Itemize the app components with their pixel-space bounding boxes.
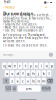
staticText: r xyxy=(19,63,21,68)
staticText: ⌃ ⊕ ⋯ xyxy=(40,5,53,8)
staticText: ⌫ xyxy=(47,79,53,83)
staticText: 9:41 xyxy=(4,0,11,4)
staticText: welcome screen. xyxy=(3,39,26,42)
staticText: 123 xyxy=(5,87,11,90)
staticText: ⇧ xyxy=(4,79,7,83)
staticText: e xyxy=(14,63,16,68)
button[interactable]: r xyxy=(18,63,22,69)
button[interactable]: x xyxy=(15,78,20,84)
button[interactable]: ⌃ ⊕ ⋯ xyxy=(40,5,53,8)
staticText: return xyxy=(42,87,51,90)
staticText: u xyxy=(35,63,37,68)
button[interactable]: space xyxy=(18,85,41,92)
staticText: o xyxy=(45,63,47,68)
staticText: q xyxy=(3,63,5,68)
staticText: f xyxy=(22,71,23,76)
staticText: v xyxy=(27,78,29,84)
button[interactable]: p xyxy=(49,63,54,69)
button[interactable]: a xyxy=(5,70,9,76)
button[interactable]: 123 xyxy=(5,85,11,92)
button[interactable]: f xyxy=(21,70,25,76)
button[interactable]: c xyxy=(21,78,25,84)
button[interactable]: y xyxy=(28,63,33,69)
button[interactable]: u xyxy=(34,63,38,69)
staticText: space xyxy=(26,87,33,90)
staticText: I'll share the deck before then. xyxy=(3,44,48,47)
staticText: k xyxy=(43,71,45,76)
staticText: We've been working on a refresh of the xyxy=(3,14,53,17)
button[interactable]: w xyxy=(7,63,12,69)
staticText: ▮▮ ⌁ ▰ xyxy=(44,1,52,4)
staticText: h xyxy=(32,71,34,76)
button[interactable]: k xyxy=(42,70,46,76)
button[interactable]: ⇧ xyxy=(3,78,9,84)
button[interactable]: s xyxy=(10,70,14,76)
staticText: w xyxy=(8,63,11,68)
button[interactable]: ⌫ xyxy=(47,78,53,84)
staticText: y xyxy=(30,63,32,68)
button[interactable]: l xyxy=(47,70,51,76)
staticText: • Simplify the first screen xyxy=(3,23,37,26)
staticText: t xyxy=(25,63,26,68)
staticText: ☺ xyxy=(13,87,16,90)
button[interactable]: v xyxy=(26,78,30,84)
button[interactable]: o xyxy=(44,63,49,69)
button[interactable]: j xyxy=(36,70,41,76)
staticText: n xyxy=(37,78,39,84)
staticText: ‹ Notes xyxy=(3,4,15,10)
button[interactable]: m xyxy=(42,78,46,84)
staticText: a xyxy=(6,71,8,76)
staticText: z xyxy=(11,78,13,84)
staticText: m xyxy=(42,78,46,84)
staticText: j xyxy=(38,71,39,76)
staticText: Let's regroup on Thursday and xyxy=(3,33,45,36)
staticText: onboarding flow. A few notes from the xyxy=(3,17,53,20)
staticText: • Move the sign-in link lower xyxy=(3,26,44,29)
staticText: b xyxy=(32,78,34,84)
staticText: • Use the new illustration set xyxy=(3,29,43,32)
staticText: i xyxy=(41,63,42,68)
button[interactable]: i xyxy=(39,63,43,69)
staticText: Message xyxy=(3,53,14,56)
button[interactable]: e xyxy=(13,63,17,69)
staticText: d xyxy=(16,71,18,76)
button[interactable]: ☺ xyxy=(12,85,17,92)
staticText: decide on the final copy for the xyxy=(3,36,49,39)
staticText: l xyxy=(49,71,50,76)
button[interactable]: d xyxy=(15,70,20,76)
button[interactable]: n xyxy=(36,78,41,84)
staticText: x xyxy=(16,78,18,84)
button[interactable]: t xyxy=(23,63,27,69)
button[interactable]: return xyxy=(41,85,51,92)
staticText: review this morning: xyxy=(3,20,30,23)
button[interactable]: q xyxy=(2,63,6,69)
staticText: g xyxy=(27,71,29,76)
staticText: s xyxy=(11,71,13,76)
button[interactable]: g xyxy=(26,70,30,76)
button[interactable]: b xyxy=(31,78,35,84)
button[interactable]: Send xyxy=(49,53,53,57)
staticText: The new design xyxy=(3,10,34,13)
staticText: c xyxy=(22,78,24,84)
staticText: p xyxy=(51,63,53,68)
button[interactable]: h xyxy=(31,70,35,76)
button[interactable]: ‹ Notes xyxy=(3,4,15,10)
button[interactable]: z xyxy=(10,78,14,84)
